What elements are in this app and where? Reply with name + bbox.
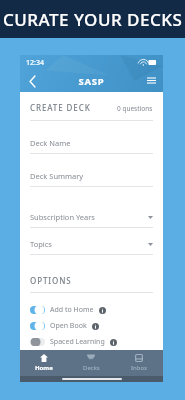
other: Info about Open Book — [92, 323, 99, 330]
staticText: Add to Home — [50, 305, 94, 315]
button[interactable]: Add to Home — [30, 302, 153, 318]
button[interactable]: Inbox — [115, 350, 163, 376]
staticText: Spaced Learning — [50, 337, 105, 347]
staticText: Home — [35, 364, 53, 372]
button[interactable]: Topics — [30, 228, 153, 255]
staticText: Open Book — [50, 321, 87, 331]
staticText: Deck Summary — [30, 171, 84, 181]
staticText: 12:34 — [26, 58, 44, 68]
staticText: SASP — [44, 75, 139, 88]
staticText: Topics — [30, 239, 52, 249]
staticText: OPTIONS — [30, 275, 72, 286]
button[interactable]: Spaced Learning — [30, 334, 153, 350]
other: Info about Add to Home — [99, 307, 106, 314]
other: Info about Spaced Learning — [110, 339, 117, 346]
staticText: Decks — [83, 364, 100, 372]
button[interactable]: Home — [20, 350, 67, 376]
button[interactable]: Deck Name — [30, 121, 153, 154]
button[interactable]: Subscription Years — [30, 201, 153, 228]
staticText: Inbox — [131, 364, 148, 372]
staticText: CURATE YOUR DECKS — [3, 8, 183, 31]
staticText: 0 questions — [117, 104, 153, 113]
staticText: Deck Name — [30, 138, 71, 148]
staticText: CREATE DECK — [30, 102, 91, 113]
button[interactable]: Menu — [139, 70, 163, 92]
staticText: Subscription Years — [30, 212, 95, 222]
button[interactable]: Decks — [67, 350, 115, 376]
button[interactable]: Deck Summary — [30, 154, 153, 187]
button[interactable]: Back — [20, 70, 44, 92]
button[interactable]: Open Book — [30, 318, 153, 334]
